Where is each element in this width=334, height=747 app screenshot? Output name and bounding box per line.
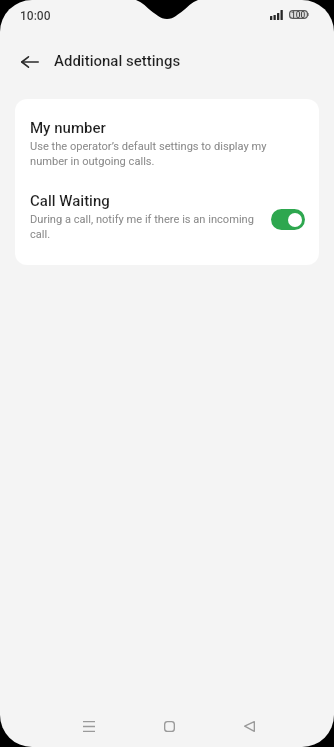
button[interactable]: Home bbox=[147, 704, 191, 747]
button[interactable]: Call Waiting toggle bbox=[271, 209, 305, 230]
staticText: During a call, notify me if there is an … bbox=[30, 213, 271, 240]
staticText: Call Waiting bbox=[30, 192, 110, 210]
button[interactable]: Call Waiting bbox=[15, 178, 319, 265]
staticText: My number bbox=[30, 119, 106, 137]
button[interactable]: My number bbox=[15, 99, 319, 178]
staticText: Use the operator’s default settings to d… bbox=[30, 140, 271, 167]
staticText: Additional settings bbox=[54, 52, 181, 70]
button[interactable]: Back bbox=[9, 41, 50, 82]
staticText: 10:00 bbox=[20, 9, 51, 23]
staticText: 100 bbox=[291, 10, 306, 19]
button[interactable]: Recent apps bbox=[67, 704, 111, 747]
button[interactable]: Back bbox=[227, 704, 271, 747]
